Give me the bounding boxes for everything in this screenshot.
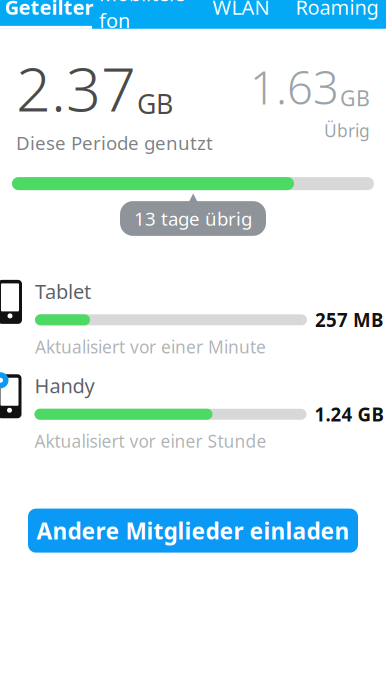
staticText: Aktualisiert vor einer Stunde: [34, 430, 266, 453]
button[interactable]: ✈: [289, 0, 385, 26]
button[interactable]: Geteilter: [1, 0, 97, 26]
staticText: 257 MB: [315, 307, 383, 332]
staticText: Roaming: [295, 0, 378, 20]
button[interactable]: Tablet: [0, 278, 386, 358]
staticText: Aktualisiert vor einer Minute: [35, 335, 266, 358]
staticText: Diese Periode genutzt: [16, 130, 213, 155]
button[interactable]: Mobiltelefon: [97, 0, 193, 26]
button[interactable]: Handy: [0, 372, 386, 453]
staticText: 2.37: [16, 47, 136, 128]
staticText: Mobiltelefon: [99, 0, 191, 33]
staticText: GB: [340, 84, 370, 112]
staticText: Andere Mitglieder einladen: [36, 516, 349, 546]
staticText: WLAN: [212, 0, 269, 20]
staticText: 1.24 GB: [314, 402, 383, 427]
staticText: 13 tage übrig: [134, 206, 252, 231]
staticText: ▲: [187, 189, 198, 206]
button[interactable]: Andere Mitglieder einladen: [28, 509, 358, 553]
staticText: Handy: [34, 372, 94, 399]
staticText: GB: [137, 86, 173, 121]
staticText: Tablet: [35, 278, 91, 304]
button[interactable]: WLAN: [193, 0, 289, 26]
staticText: Übrig: [324, 119, 370, 142]
staticText: Geteilter: [4, 0, 93, 20]
staticText: 1.63: [250, 57, 339, 117]
